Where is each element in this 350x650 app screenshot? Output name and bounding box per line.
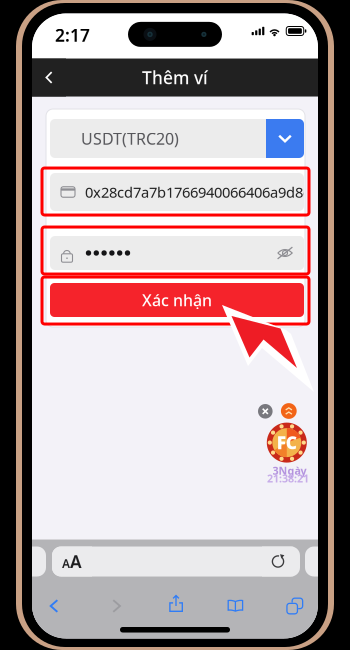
button[interactable]: Choose network USDT TRC20: [50, 119, 304, 158]
button[interactable]: Back: [32, 58, 66, 96]
staticText: 0x28cd7a7b1766940066406a9d8c4a2: [85, 182, 334, 202]
button[interactable]: Bookmarks: [213, 589, 257, 623]
button[interactable]: Share: [154, 589, 198, 623]
button[interactable]: Reload: [262, 546, 294, 576]
staticText: 3Ngày: [273, 463, 307, 478]
staticText: 2:17: [55, 23, 90, 46]
button[interactable]: Expand panel: [280, 402, 298, 420]
staticText: Thêm ví: [142, 66, 208, 89]
button[interactable]: Tabs: [273, 589, 317, 623]
button[interactable]: Back: [32, 589, 76, 623]
button[interactable]: Show password: [266, 236, 304, 270]
staticText: A: [70, 550, 82, 573]
button[interactable]: Xác nhận: [50, 283, 304, 317]
button[interactable]: Forward: [95, 589, 139, 623]
button[interactable]: Page settings: [52, 546, 92, 576]
staticText: FC: [277, 431, 297, 454]
staticText: 21:38:21: [267, 471, 309, 485]
button[interactable]: FC rewards: [268, 424, 306, 462]
staticText: USDT(TRC20): [81, 128, 179, 149]
staticText: A: [62, 556, 70, 571]
staticText: Xác nhận: [142, 289, 212, 311]
button[interactable]: Close: [256, 402, 274, 420]
